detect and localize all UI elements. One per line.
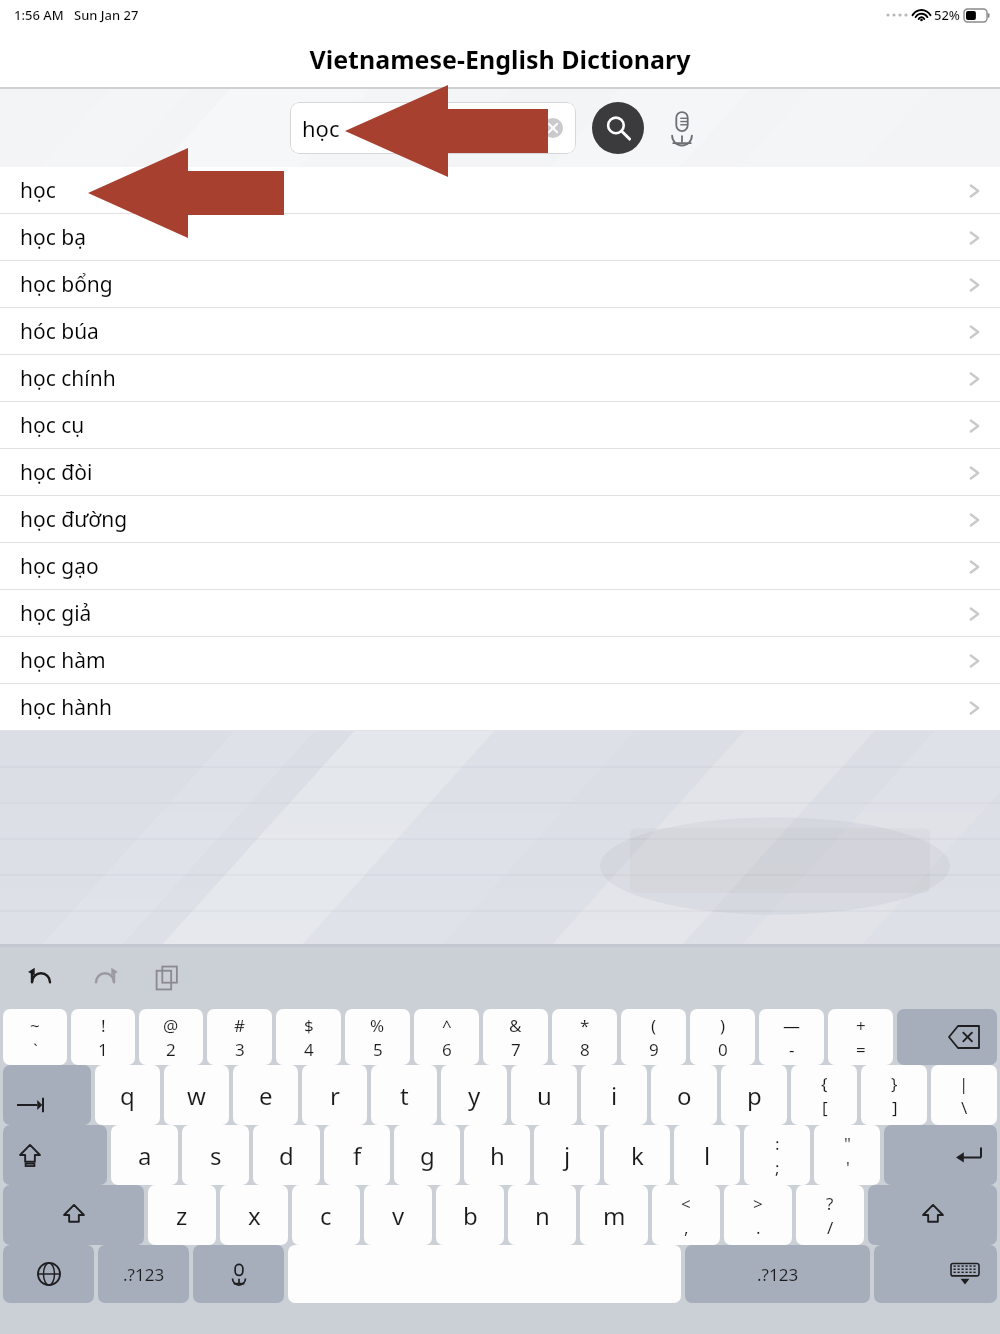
button[interactable]: Clear text xyxy=(540,115,566,141)
staticText: = xyxy=(856,1038,866,1061)
button[interactable]: — xyxy=(759,1009,824,1065)
button[interactable]: c xyxy=(292,1185,360,1245)
button[interactable]: @ xyxy=(139,1009,203,1065)
button[interactable]: f xyxy=(324,1125,390,1185)
button[interactable]: t xyxy=(371,1065,437,1125)
button[interactable]: học đòi xyxy=(0,449,1000,496)
button[interactable]: học cụ xyxy=(0,402,1000,449)
staticText: 0 xyxy=(718,1038,728,1061)
button[interactable]: học hàm xyxy=(0,637,1000,684)
staticText: ( xyxy=(651,1014,657,1037)
button[interactable]: học bổng xyxy=(0,261,1000,308)
staticText: - xyxy=(789,1038,795,1061)
button[interactable]: } xyxy=(861,1065,927,1125)
staticText: ? xyxy=(826,1192,834,1215)
button[interactable]: học xyxy=(290,102,576,154)
button[interactable]: + xyxy=(828,1009,893,1065)
button[interactable]: z xyxy=(148,1185,216,1245)
button[interactable]: ^ xyxy=(414,1009,479,1065)
button[interactable]: u xyxy=(511,1065,577,1125)
button[interactable]: * xyxy=(552,1009,617,1065)
button[interactable]: Backspace xyxy=(897,1009,997,1065)
button[interactable]: Shift xyxy=(3,1185,144,1245)
button[interactable]: học giả xyxy=(0,590,1000,637)
button[interactable]: { xyxy=(791,1065,857,1125)
button[interactable]: ( xyxy=(621,1009,686,1065)
button[interactable]: k xyxy=(604,1125,670,1185)
staticText: . xyxy=(756,1216,761,1239)
staticText: ` xyxy=(33,1038,38,1061)
button[interactable]: Dictate xyxy=(193,1245,284,1303)
button[interactable]: m xyxy=(580,1185,648,1245)
button[interactable]: Search xyxy=(592,102,644,154)
staticText: a xyxy=(138,1139,152,1172)
button[interactable]: ~ xyxy=(3,1009,67,1065)
staticText: g xyxy=(420,1139,435,1172)
button[interactable]: học bạ xyxy=(0,214,1000,261)
button[interactable]: < xyxy=(652,1185,720,1245)
button[interactable]: ? xyxy=(796,1185,864,1245)
button[interactable]: ) xyxy=(690,1009,755,1065)
staticText: & xyxy=(509,1014,522,1037)
button[interactable]: học chính xyxy=(0,355,1000,402)
button[interactable]: v xyxy=(364,1185,432,1245)
button[interactable]: b xyxy=(436,1185,504,1245)
button[interactable]: học gạo xyxy=(0,543,1000,590)
button[interactable]: y xyxy=(441,1065,507,1125)
button[interactable]: hóc búa xyxy=(0,308,1000,355)
button[interactable]: i xyxy=(581,1065,647,1125)
button[interactable]: j xyxy=(534,1125,600,1185)
button[interactable]: Undo xyxy=(24,961,58,995)
button[interactable]: học xyxy=(0,167,1000,214)
button[interactable]: " xyxy=(814,1125,880,1185)
staticText: học hành xyxy=(20,693,112,722)
staticText: 1:56 AM xyxy=(14,6,64,24)
button[interactable]: Tab xyxy=(3,1065,91,1125)
button[interactable]: o xyxy=(651,1065,717,1125)
button[interactable]: n xyxy=(508,1185,576,1245)
button[interactable]: .?123 xyxy=(98,1245,189,1303)
button[interactable]: e xyxy=(233,1065,298,1125)
button[interactable]: ! xyxy=(71,1009,135,1065)
button[interactable]: s xyxy=(182,1125,249,1185)
button[interactable]: .?123 xyxy=(685,1245,870,1303)
button[interactable]: Change keyboard xyxy=(3,1245,94,1303)
staticText: b xyxy=(463,1199,478,1232)
button[interactable]: Shift xyxy=(868,1185,997,1245)
button[interactable]: | xyxy=(931,1065,997,1125)
button[interactable]: Hide keyboard xyxy=(874,1245,997,1303)
button[interactable]: học đường xyxy=(0,496,1000,543)
button[interactable]: l xyxy=(674,1125,740,1185)
button[interactable]: g xyxy=(394,1125,460,1185)
button[interactable]: Redo xyxy=(88,961,122,995)
button[interactable]: $ xyxy=(276,1009,341,1065)
staticText: l xyxy=(704,1139,711,1172)
button[interactable]: # xyxy=(207,1009,272,1065)
button[interactable]: w xyxy=(164,1065,229,1125)
staticText: 9 xyxy=(649,1038,659,1061)
button[interactable]: a xyxy=(111,1125,178,1185)
staticText: học bổng xyxy=(20,270,113,299)
button[interactable]: r xyxy=(302,1065,367,1125)
button[interactable]: d xyxy=(253,1125,320,1185)
button[interactable]: học hành xyxy=(0,684,1000,731)
button[interactable]: x xyxy=(220,1185,288,1245)
staticText: : xyxy=(775,1132,780,1155)
staticText: ] xyxy=(892,1096,898,1119)
button[interactable]: Caps lock xyxy=(3,1125,107,1185)
button[interactable]: p xyxy=(721,1065,787,1125)
staticText: 52% xyxy=(934,6,960,24)
staticText: k xyxy=(631,1139,644,1172)
button[interactable]: : xyxy=(744,1125,810,1185)
button[interactable]: Return xyxy=(884,1125,997,1185)
button[interactable]: & xyxy=(483,1009,548,1065)
staticText: " xyxy=(844,1132,851,1155)
button[interactable]: > xyxy=(724,1185,792,1245)
button[interactable]: q xyxy=(95,1065,160,1125)
button[interactable]: h xyxy=(464,1125,530,1185)
staticText: < xyxy=(681,1192,691,1215)
button[interactable]: Paste xyxy=(150,961,184,995)
button[interactable]: % xyxy=(345,1009,410,1065)
button[interactable]: Voice search xyxy=(658,104,706,152)
